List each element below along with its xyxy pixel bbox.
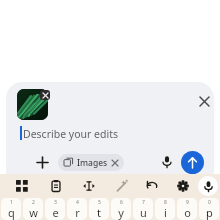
- button[interactable]: 0: [199, 198, 219, 220]
- button[interactable]: Settings: [172, 175, 194, 197]
- staticText: Images: [77, 157, 108, 169]
- staticText: 7: [142, 199, 145, 206]
- button[interactable]: Images: [58, 154, 124, 171]
- staticText: 3: [54, 199, 57, 206]
- staticText: 2: [32, 199, 35, 206]
- button[interactable]: Voice input: [157, 152, 177, 172]
- staticText: w: [29, 205, 38, 220]
- staticText: 5: [98, 199, 101, 206]
- button[interactable]: Enhance: [111, 175, 133, 197]
- button[interactable]: Clipboard grid: [11, 175, 33, 197]
- staticText: 4: [76, 199, 79, 206]
- button[interactable]: 5: [89, 198, 109, 220]
- staticText: 1: [10, 199, 13, 206]
- button[interactable]: 8: [155, 198, 175, 220]
- button[interactable]: Close: [194, 91, 214, 111]
- button[interactable]: 9: [177, 198, 197, 220]
- staticText: t: [97, 205, 101, 220]
- button[interactable]: 7: [133, 198, 153, 220]
- button[interactable]: 6: [111, 198, 131, 220]
- button[interactable]: Add: [32, 152, 52, 172]
- staticText: 8: [164, 199, 167, 206]
- staticText: o: [184, 205, 191, 220]
- staticText: p: [206, 205, 213, 220]
- staticText: 6: [120, 199, 123, 206]
- button[interactable]: 1: [1, 198, 21, 220]
- staticText: q: [8, 205, 15, 220]
- staticText: i: [164, 205, 167, 220]
- staticText: 9: [186, 199, 189, 206]
- button[interactable]: Text editing: [78, 175, 100, 197]
- button[interactable]: Voice typing: [198, 176, 218, 196]
- staticText: r: [75, 205, 80, 220]
- staticText: 0: [208, 199, 211, 206]
- button[interactable]: Send: [181, 151, 204, 174]
- button[interactable]: Remove image: [40, 90, 50, 100]
- button[interactable]: Clipboard: [45, 175, 67, 197]
- button[interactable]: Attached image: [17, 89, 51, 123]
- staticText: y: [118, 205, 124, 220]
- staticText: Describe your edits: [23, 127, 118, 141]
- staticText: e: [52, 205, 59, 220]
- button[interactable]: 2: [23, 198, 43, 220]
- button[interactable]: 4: [67, 198, 87, 220]
- button[interactable]: 3: [45, 198, 65, 220]
- staticText: u: [140, 205, 147, 220]
- button[interactable]: Undo: [141, 175, 163, 197]
